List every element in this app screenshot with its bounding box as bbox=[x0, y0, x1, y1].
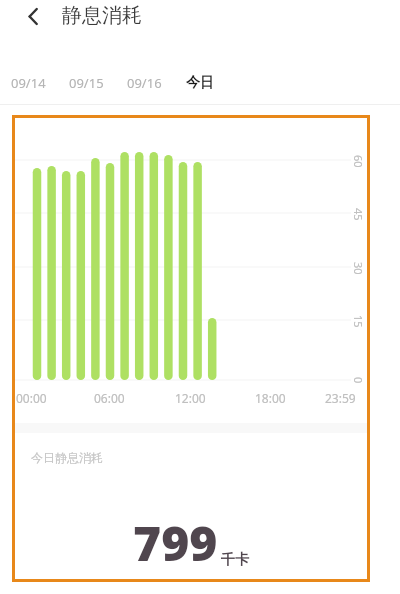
staticText: 45 bbox=[351, 208, 366, 221]
staticText: 千卡 bbox=[221, 551, 249, 569]
button[interactable]: 今日 bbox=[186, 70, 228, 96]
staticText: 23:59 bbox=[325, 390, 356, 406]
staticText: 60 bbox=[351, 155, 366, 168]
button[interactable]: 09/14 bbox=[11, 70, 63, 96]
staticText: 799 bbox=[133, 510, 218, 575]
button[interactable]: 09/15 bbox=[69, 70, 121, 96]
staticText: 静息消耗 bbox=[62, 3, 142, 28]
staticText: 0 bbox=[351, 377, 366, 384]
staticText: 09/15 bbox=[69, 74, 104, 92]
button[interactable]: Back bbox=[10, 0, 56, 32]
staticText: 今日 bbox=[186, 74, 214, 92]
staticText: 09/16 bbox=[127, 74, 162, 92]
staticText: 18:00 bbox=[255, 390, 286, 406]
staticText: 09/14 bbox=[11, 74, 46, 92]
staticText: 12:00 bbox=[175, 390, 206, 406]
button[interactable]: 09/16 bbox=[127, 70, 179, 96]
staticText: 今日静息消耗 bbox=[31, 450, 103, 465]
staticText: 06:00 bbox=[94, 390, 125, 406]
staticText: 00:00 bbox=[16, 390, 47, 406]
staticText: 30 bbox=[351, 262, 366, 275]
staticText: 15 bbox=[351, 315, 366, 328]
